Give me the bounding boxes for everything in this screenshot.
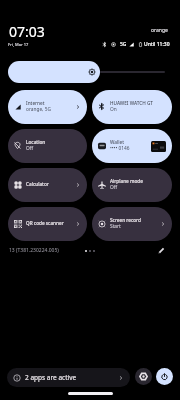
button[interactable]: HUAWEI WATCH GT <box>92 90 172 124</box>
button[interactable]: Calculator <box>8 168 87 202</box>
button[interactable]: Wallet <box>92 129 172 163</box>
staticText: Off <box>26 145 34 152</box>
staticText: Off <box>110 184 118 191</box>
button[interactable]: Edit <box>157 246 166 255</box>
button[interactable]: Power <box>156 368 173 385</box>
staticText: On <box>110 106 117 113</box>
staticText: •••• 0146 <box>110 145 130 152</box>
staticText: Location <box>26 139 46 145</box>
button[interactable]: Airplane mode <box>92 168 172 202</box>
staticText: Fri, Mar 17 <box>8 42 29 47</box>
staticText: Wallet <box>110 139 125 145</box>
staticText: Until 11:30 <box>144 41 170 48</box>
button[interactable]: Screen record <box>92 207 172 241</box>
button[interactable]: Brightness <box>8 61 172 83</box>
staticText: 5G <box>120 41 127 48</box>
button[interactable]: QR code scanner <box>8 207 87 241</box>
staticText: 2 apps are active <box>25 373 77 382</box>
staticText: Calculator <box>26 181 49 187</box>
staticText: orange, 5G <box>26 106 51 113</box>
button[interactable]: Location <box>8 129 87 163</box>
button[interactable]: Internet <box>8 90 87 124</box>
staticText: Start <box>110 223 121 230</box>
staticText: Internet <box>26 100 45 106</box>
staticText: HUAWEI WATCH GT <box>110 100 153 106</box>
button[interactable]: Settings <box>135 368 152 385</box>
staticText: 07:03 <box>9 22 45 41</box>
staticText: Airplane mode <box>110 178 143 184</box>
staticText: Screen record <box>110 217 141 223</box>
staticText: 13 (T381.230224.005) <box>9 247 59 254</box>
staticText: orange <box>151 27 168 34</box>
staticText: QR code scanner <box>26 220 64 226</box>
button[interactable]: 2 apps are active <box>7 368 130 387</box>
